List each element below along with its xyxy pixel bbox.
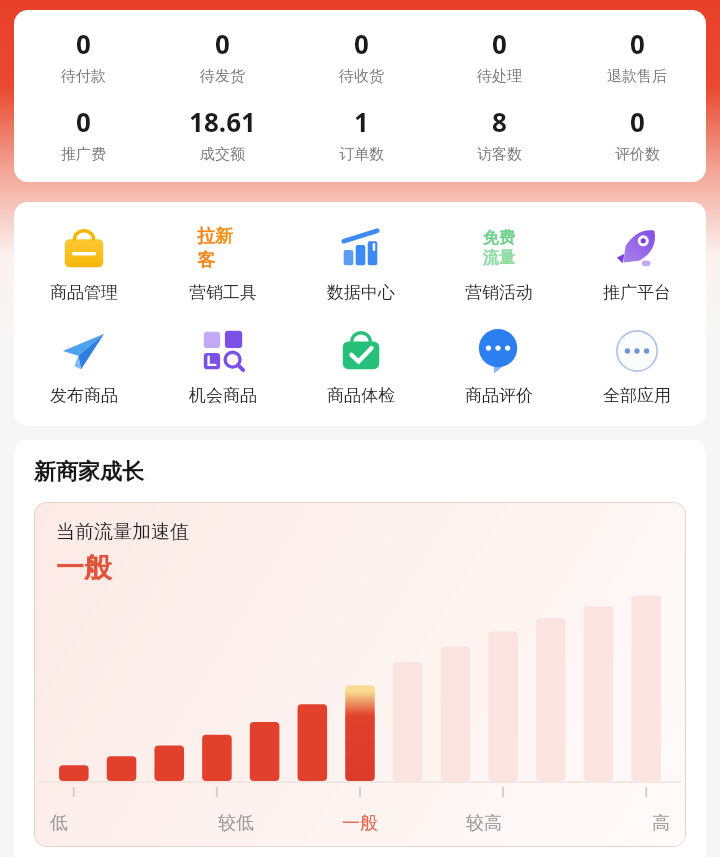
button[interactable]: 商品体检 [292,321,430,410]
button[interactable]: 全部应用 [568,321,706,410]
staticText: 机会商品 [189,385,257,406]
staticText: 待付款 [61,67,106,86]
staticText: 营销活动 [465,282,533,303]
staticText: 免费 [483,228,515,248]
staticText: 0 [76,104,91,139]
button[interactable]: 免费 [430,218,568,307]
button[interactable]: 1 [292,102,430,166]
button[interactable]: 数据中心 [292,218,430,307]
staticText: 营销工具 [189,282,257,303]
staticText: 1 [354,104,369,139]
staticText: 0 [215,26,230,61]
staticText: 全部应用 [603,385,671,406]
staticText: 商品评价 [465,385,533,406]
button[interactable]: 拉新客 [153,218,292,307]
staticText: 0 [492,26,507,61]
button[interactable]: 0 [14,24,153,88]
staticText: 发布商品 [50,385,118,406]
button[interactable]: 8 [430,102,568,166]
staticText: 低 [50,812,174,835]
staticText: 0 [630,26,645,61]
staticText: 一般 [298,812,422,835]
staticText: 评价数 [615,145,660,164]
button[interactable]: 0 [14,102,153,166]
staticText: 待发货 [200,67,245,86]
staticText: 0 [354,26,369,61]
button[interactable]: 商品评价 [430,321,568,410]
staticText: 18.61 [189,104,256,139]
button[interactable]: 商品管理 [14,218,153,307]
staticText: 8 [492,104,507,139]
staticText: 待收货 [339,67,384,86]
staticText: 推广平台 [603,282,671,303]
button[interactable]: 0 [568,24,706,88]
staticText: 订单数 [339,145,384,164]
button[interactable]: 0 [430,24,568,88]
button[interactable]: 18.61 [153,102,292,166]
staticText: 0 [630,104,645,139]
button[interactable]: 新商家成长 [34,458,144,486]
staticText: 较高 [422,812,546,835]
staticText: 推广费 [61,145,106,164]
button[interactable]: 0 [292,24,430,88]
staticText: 退款售后 [607,67,667,86]
button[interactable]: 发布商品 [14,321,153,410]
staticText: 数据中心 [327,282,395,303]
button[interactable]: 当前流量加速值 [34,502,686,847]
button[interactable]: 0 [153,24,292,88]
staticText: 高 [546,812,670,835]
staticText: 较低 [174,812,298,835]
button[interactable]: 0 [568,102,706,166]
staticText: 流量 [483,248,515,268]
staticText: 商品管理 [50,282,118,303]
staticText: 待处理 [477,67,522,86]
staticText: 成交额 [200,145,245,164]
staticText: 当前流量加速值 [56,520,189,544]
button[interactable]: 机会商品 [153,321,292,410]
button[interactable]: 推广平台 [568,218,706,307]
staticText: 一般 [56,550,112,585]
staticText: 访客数 [477,145,522,164]
staticText: 拉新客 [197,225,249,271]
staticText: 商品体检 [327,385,395,406]
staticText: 0 [76,26,91,61]
